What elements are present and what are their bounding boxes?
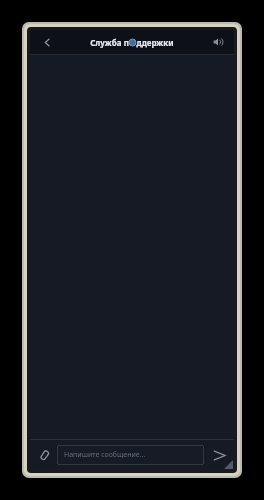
staticText: Напишите сообщение...	[64, 450, 146, 460]
button[interactable]: Back	[37, 32, 57, 52]
staticText: Служба п	[90, 37, 129, 48]
button[interactable]: Send	[209, 445, 229, 465]
button[interactable]: Напишите сообщение...	[57, 445, 204, 465]
staticText: ддержки	[136, 37, 174, 48]
button[interactable]: Attach file	[35, 446, 53, 464]
button[interactable]: Sound	[208, 32, 228, 52]
